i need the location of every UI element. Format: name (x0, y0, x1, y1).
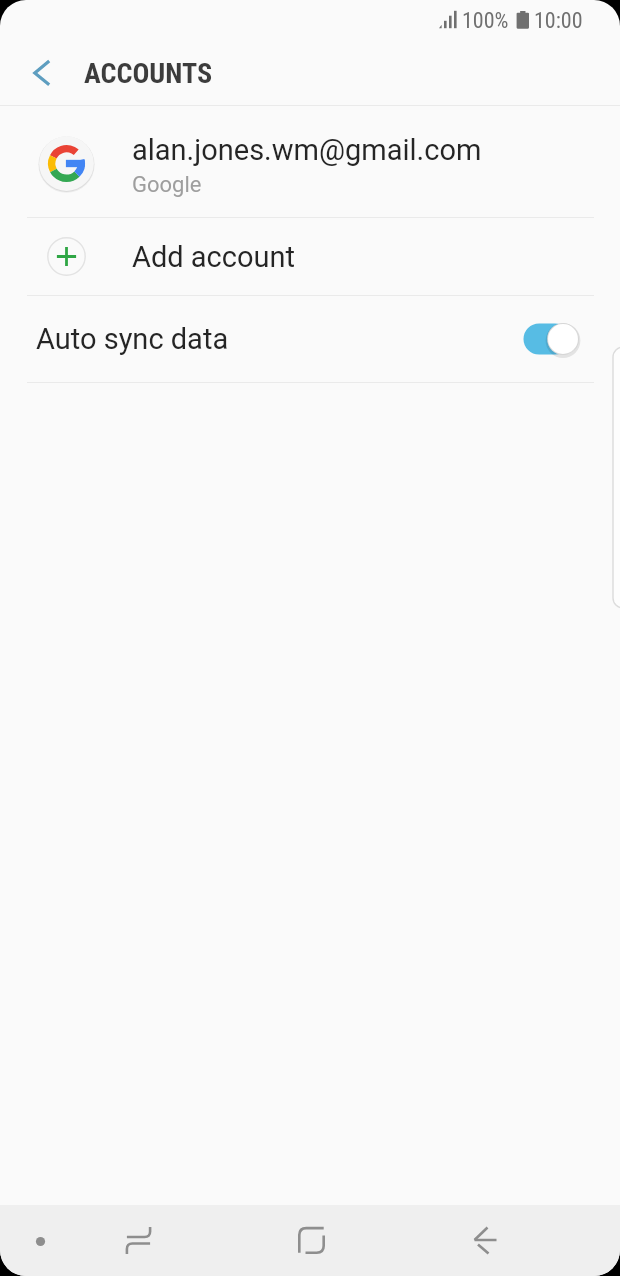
button[interactable]: More options (8, 1209, 73, 1274)
staticText: Add account (132, 240, 295, 274)
button[interactable]: Add account (0, 218, 620, 295)
staticText: 10:00 (534, 8, 583, 34)
staticText: alan.jones.wm@gmail.com (132, 133, 482, 167)
button[interactable]: Home (276, 1205, 347, 1276)
button[interactable]: Back (450, 1205, 521, 1276)
button[interactable]: Recent apps (103, 1205, 174, 1276)
staticText: Google (132, 172, 202, 198)
button[interactable]: alan.jones.wm@gmail.com (0, 106, 620, 217)
staticText: Auto sync data (36, 322, 229, 356)
button[interactable]: Auto sync data, on (521, 320, 581, 358)
staticText: ACCOUNTS (84, 57, 213, 90)
button[interactable]: Auto sync data (0, 296, 620, 382)
button[interactable]: Navigate up (18, 49, 65, 96)
staticText: 100% (462, 8, 509, 34)
